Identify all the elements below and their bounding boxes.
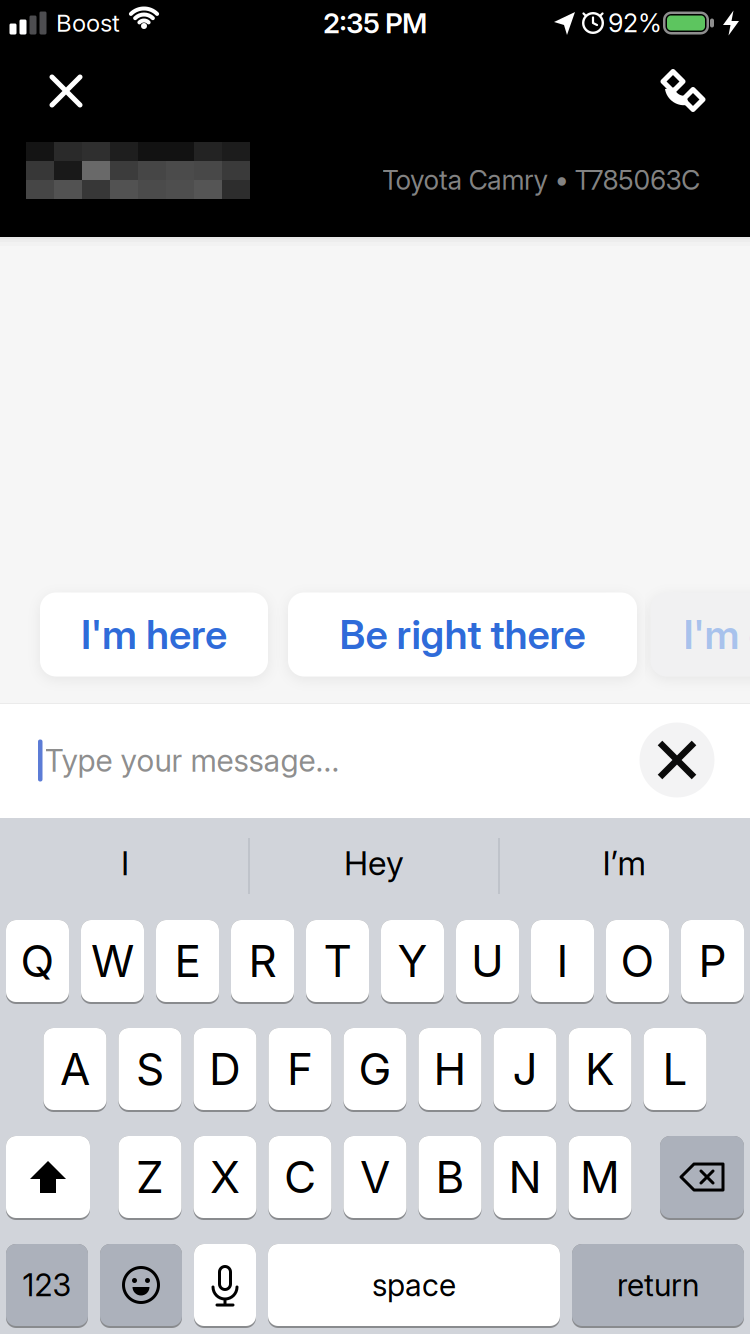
staticText: Toyota Camry • T785063C <box>382 164 700 196</box>
button[interactable]: Type your message <box>0 703 620 818</box>
button[interactable]: Q <box>6 920 69 1004</box>
staticText: 123 <box>22 1267 71 1303</box>
button[interactable]: I <box>1 818 249 908</box>
staticText: A <box>60 1043 90 1095</box>
button[interactable]: L <box>643 1028 706 1112</box>
staticText: C <box>284 1151 316 1203</box>
button[interactable]: Z <box>118 1136 181 1220</box>
staticText: U <box>471 935 504 987</box>
button[interactable]: I’m <box>499 818 749 908</box>
staticText: 2:35 PM <box>323 6 427 39</box>
staticText: Boost <box>56 9 120 37</box>
button[interactable]: K <box>568 1028 631 1112</box>
staticText: Hey <box>344 843 404 883</box>
button[interactable]: P <box>681 920 744 1004</box>
button[interactable]: T <box>306 920 369 1004</box>
button[interactable]: return <box>572 1244 744 1328</box>
staticText: Y <box>397 935 427 987</box>
button[interactable]: J <box>493 1028 556 1112</box>
button[interactable]: Dictate <box>194 1244 256 1328</box>
button[interactable]: X <box>193 1136 256 1220</box>
staticText: H <box>433 1043 466 1095</box>
staticText: O <box>620 935 654 987</box>
button[interactable]: Hey <box>249 818 499 908</box>
button[interactable]: U <box>456 920 519 1004</box>
staticText: R <box>248 935 276 987</box>
staticText: P <box>698 935 726 987</box>
button[interactable]: R <box>231 920 294 1004</box>
staticText: I <box>121 843 129 883</box>
button[interactable]: H <box>418 1028 481 1112</box>
button[interactable]: Clear text <box>639 722 714 797</box>
button[interactable]: E <box>156 920 219 1004</box>
button[interactable]: S <box>118 1028 181 1112</box>
staticText: I’m <box>602 843 645 883</box>
staticText: N <box>508 1151 541 1203</box>
staticText: Q <box>20 935 54 987</box>
staticText: Be right there <box>339 611 585 658</box>
button[interactable]: W <box>81 920 144 1004</box>
staticText: B <box>435 1151 464 1203</box>
button[interactable]: Call <box>653 63 713 123</box>
button[interactable]: B <box>418 1136 481 1220</box>
button[interactable]: O <box>606 920 669 1004</box>
button[interactable]: I'm here <box>40 592 268 676</box>
button[interactable]: space <box>268 1244 560 1328</box>
staticText: I'm on my way <box>683 611 750 658</box>
button[interactable]: F <box>268 1028 331 1112</box>
staticText: D <box>209 1043 241 1095</box>
button[interactable]: Y <box>381 920 444 1004</box>
button[interactable]: Shift <box>6 1136 90 1220</box>
button[interactable]: I'm on my way <box>657 592 750 676</box>
staticText: Type your message... <box>44 742 339 779</box>
staticText: F <box>287 1043 313 1095</box>
staticText: 92% <box>608 8 662 38</box>
staticText: J <box>512 1043 537 1095</box>
button[interactable]: Be right there <box>288 592 637 676</box>
staticText: space <box>372 1267 456 1303</box>
staticText: T <box>323 935 351 987</box>
button[interactable]: Close <box>36 61 96 121</box>
button[interactable]: Emoji <box>100 1244 182 1328</box>
button[interactable]: I <box>531 920 594 1004</box>
button[interactable]: 123 <box>6 1244 88 1328</box>
button[interactable]: V <box>343 1136 406 1220</box>
staticText: X <box>210 1151 240 1203</box>
button[interactable]: G <box>343 1028 406 1112</box>
staticText: return <box>617 1267 699 1303</box>
button[interactable]: N <box>493 1136 556 1220</box>
button[interactable]: C <box>268 1136 331 1220</box>
staticText: V <box>360 1151 390 1203</box>
staticText: K <box>585 1043 615 1095</box>
button[interactable]: D <box>193 1028 256 1112</box>
staticText: I'm here <box>81 611 227 658</box>
staticText: E <box>174 935 200 987</box>
staticText: Z <box>136 1151 164 1203</box>
staticText: S <box>136 1043 164 1095</box>
staticText: G <box>358 1043 391 1095</box>
button[interactable]: Delete <box>660 1136 744 1220</box>
staticText: L <box>662 1043 687 1095</box>
staticText: I <box>556 935 568 987</box>
button[interactable]: A <box>43 1028 106 1112</box>
staticText: M <box>580 1151 620 1203</box>
staticText: W <box>91 935 134 987</box>
button[interactable]: M <box>568 1136 631 1220</box>
